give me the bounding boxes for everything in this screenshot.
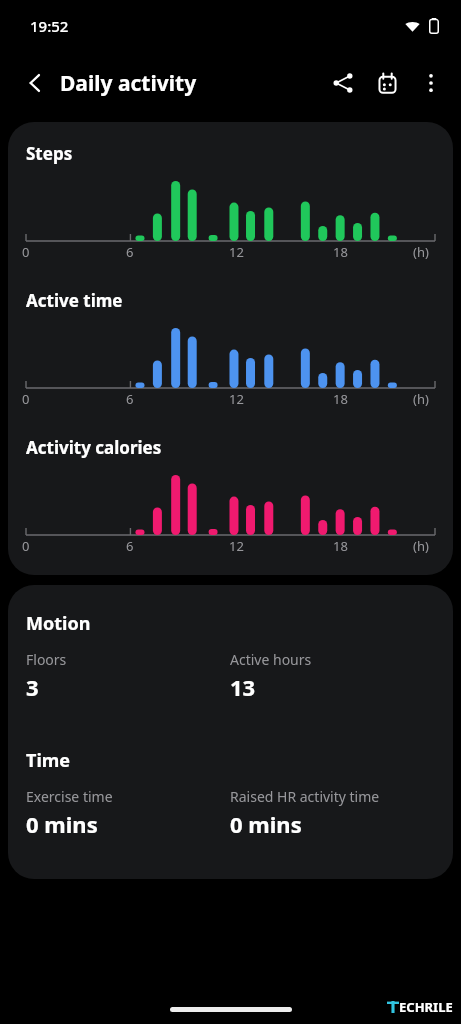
staticText: Floors: [26, 650, 67, 669]
button[interactable]: Share: [321, 61, 365, 105]
staticText: 0 mins: [230, 809, 302, 839]
staticText: (h): [413, 537, 429, 555]
staticText: 18: [333, 243, 348, 261]
staticText: Exercise time: [26, 787, 113, 806]
staticText: 6: [126, 390, 134, 408]
button[interactable]: Calendar: [365, 61, 409, 105]
staticText: 0: [22, 390, 30, 408]
staticText: ECHRILE: [399, 998, 453, 1016]
staticText: Time: [26, 748, 71, 773]
staticText: 6: [126, 243, 134, 261]
staticText: 19:52: [30, 16, 69, 36]
staticText: 12: [229, 537, 244, 555]
staticText: (h): [413, 243, 429, 261]
staticText: 18: [333, 390, 348, 408]
button[interactable]: Back: [14, 62, 56, 104]
staticText: 3: [26, 672, 39, 702]
staticText: 0: [22, 537, 30, 555]
staticText: Motion: [26, 611, 91, 636]
staticText: 12: [229, 243, 244, 261]
staticText: Active time: [26, 289, 123, 312]
staticText: Steps: [26, 142, 73, 165]
staticText: Daily activity: [60, 69, 197, 98]
staticText: 0 mins: [26, 809, 98, 839]
staticText: 6: [126, 537, 134, 555]
staticText: (h): [413, 390, 429, 408]
staticText: Activity calories: [26, 436, 162, 459]
staticText: Raised HR activity time: [230, 787, 380, 806]
staticText: 0: [22, 243, 30, 261]
staticText: 18: [333, 537, 348, 555]
button[interactable]: More options: [409, 61, 453, 105]
staticText: 12: [229, 390, 244, 408]
staticText: 13: [230, 672, 256, 702]
staticText: Active hours: [230, 650, 312, 669]
